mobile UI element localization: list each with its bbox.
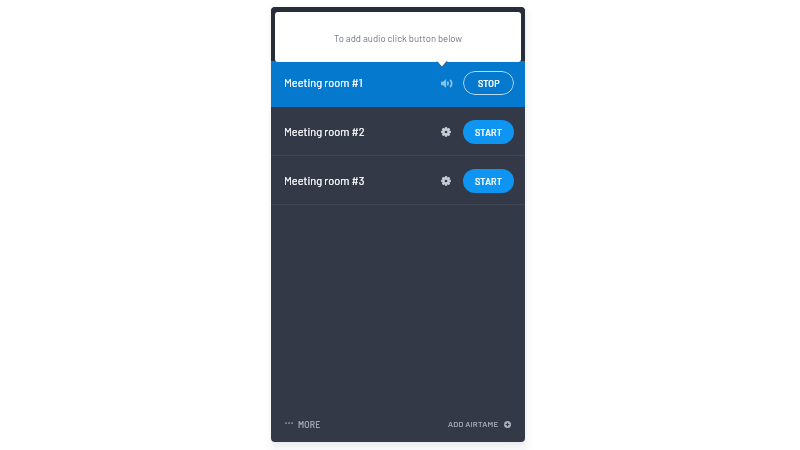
staticText: Meeting room #2 bbox=[284, 125, 365, 138]
button[interactable]: Meeting room #1 bbox=[271, 58, 525, 107]
staticText: Meeting room #1 bbox=[284, 76, 363, 89]
staticText: ADD AIRTAME bbox=[448, 419, 499, 429]
button[interactable]: START bbox=[463, 169, 514, 193]
staticText: STOP bbox=[478, 78, 500, 89]
button[interactable]: Meeting room #3 bbox=[271, 156, 525, 205]
staticText: To add audio click button below bbox=[334, 32, 463, 43]
button[interactable]: Audio output bbox=[439, 74, 453, 92]
button[interactable]: Settings bbox=[439, 172, 453, 190]
button[interactable]: Meeting room #2 bbox=[271, 107, 525, 156]
staticText: START bbox=[475, 127, 503, 138]
staticText: START bbox=[475, 176, 503, 187]
button[interactable]: ADD AIRTAME bbox=[447, 414, 512, 434]
button[interactable]: START bbox=[463, 120, 514, 144]
staticText: Meeting room #3 bbox=[284, 174, 365, 187]
button[interactable]: STOP bbox=[463, 71, 514, 95]
button[interactable]: Settings bbox=[439, 123, 453, 141]
button[interactable]: MORE bbox=[284, 414, 322, 434]
staticText: MORE bbox=[298, 419, 321, 429]
